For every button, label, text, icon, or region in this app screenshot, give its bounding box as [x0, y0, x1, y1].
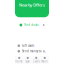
staticText: Cards	[33, 60, 40, 63]
staticText: Gift cards	[22, 44, 34, 47]
staticText: Home	[15, 60, 23, 63]
button[interactable]: Find deals	[15, 23, 49, 27]
button[interactable]: More	[40, 57, 49, 63]
button[interactable]: Scan	[23, 57, 32, 63]
staticText: Nearby Offers	[19, 2, 45, 8]
staticText: Send money to a friend	[22, 49, 46, 53]
staticText: More	[41, 60, 48, 63]
button[interactable]: Send money to a friend	[15, 49, 49, 53]
staticText: Find deals	[24, 23, 38, 27]
button[interactable]: Gift cards	[15, 44, 49, 47]
button[interactable]: Cards	[32, 57, 40, 63]
button[interactable]: Home	[15, 57, 23, 63]
staticText: Scan	[25, 60, 30, 63]
